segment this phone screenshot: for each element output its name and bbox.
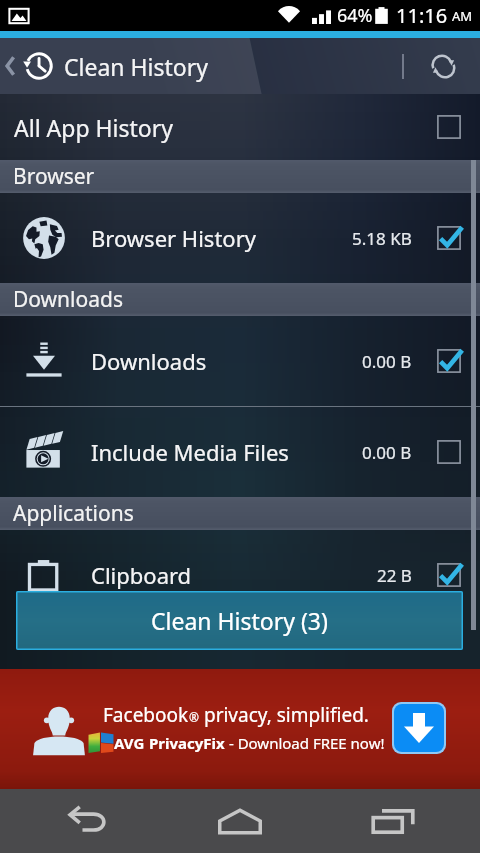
- button[interactable]: Checkbox: [434, 223, 464, 253]
- button[interactable]: Checkbox: [434, 346, 464, 376]
- button[interactable]: Download: [394, 704, 444, 752]
- button[interactable]: Checkbox: [434, 560, 464, 590]
- staticText: AM: [452, 7, 473, 25]
- staticText: AVG: [114, 733, 145, 753]
- staticText: Browser History: [91, 223, 256, 253]
- button[interactable]: All App History: [0, 94, 480, 160]
- staticText: 11:16: [396, 2, 448, 29]
- staticText: Applications: [13, 499, 134, 528]
- staticText: Clipboard: [91, 560, 192, 590]
- staticText: Facebook: [103, 702, 189, 728]
- button[interactable]: Checkbox: [434, 112, 464, 142]
- staticText: Browser: [13, 162, 95, 191]
- staticText: Include Media Files: [91, 437, 289, 467]
- staticText: ®: [189, 709, 199, 725]
- staticText: - Download FREE now!: [225, 733, 385, 753]
- staticText: All App History: [14, 112, 173, 143]
- staticText: 22 B: [377, 564, 412, 587]
- button[interactable]: Facebook: [0, 669, 480, 789]
- button[interactable]: Clean History (3): [16, 591, 463, 650]
- staticText: Downloads: [91, 346, 207, 376]
- staticText: 5.18 KB: [352, 227, 412, 250]
- button[interactable]: Refresh: [406, 38, 480, 94]
- button[interactable]: Browser History: [0, 193, 480, 283]
- staticText: Clean History: [64, 51, 208, 82]
- button[interactable]: Downloads: [0, 316, 480, 406]
- button[interactable]: Back: [23, 789, 153, 853]
- button[interactable]: Checkbox: [434, 437, 464, 467]
- button[interactable]: Back: [0, 38, 218, 94]
- staticText: privacy, simplified.: [199, 702, 369, 728]
- staticText: Clean History (3): [151, 605, 328, 636]
- staticText: PrivacyFix: [149, 733, 225, 753]
- staticText: 0.00 B: [362, 350, 412, 373]
- button[interactable]: Home: [175, 789, 305, 853]
- button[interactable]: Clipboard: [0, 530, 480, 620]
- staticText: 0.00 B: [362, 441, 412, 464]
- button[interactable]: Include Media Files: [0, 407, 480, 497]
- staticText: Downloads: [13, 285, 123, 314]
- button[interactable]: Recents: [328, 789, 458, 853]
- staticText: 64%: [337, 3, 373, 28]
